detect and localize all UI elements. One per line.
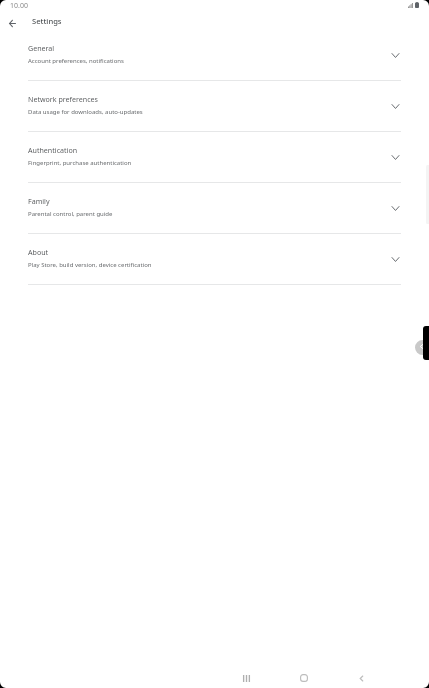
button[interactable]: Back	[3, 14, 22, 33]
staticText: Fingerprint, purchase authentication	[28, 159, 132, 167]
button[interactable]: Family	[0, 183, 429, 234]
staticText: 10.00	[10, 1, 28, 11]
button[interactable]: Home	[296, 670, 312, 686]
button[interactable]: Authentication	[0, 132, 429, 183]
staticText: Family	[28, 196, 50, 206]
button[interactable]: Back gesture	[415, 340, 429, 355]
staticText: Settings	[32, 16, 62, 26]
staticText: Play Store, build version, device certif…	[28, 261, 152, 269]
staticText: General	[28, 43, 55, 53]
button[interactable]: Network preferences	[0, 81, 429, 132]
staticText: Parental control, parent guide	[28, 210, 113, 218]
button[interactable]: Back	[353, 670, 369, 686]
button[interactable]: Recent apps	[238, 670, 254, 686]
staticText: Data usage for downloads, auto-updates	[28, 108, 143, 116]
button[interactable]: About	[0, 234, 429, 285]
staticText: About	[28, 247, 49, 257]
staticText: Authentication	[28, 145, 78, 155]
button[interactable]: General	[0, 30, 429, 81]
staticText: Network preferences	[28, 94, 98, 104]
staticText: Account preferences, notifications	[28, 57, 124, 65]
